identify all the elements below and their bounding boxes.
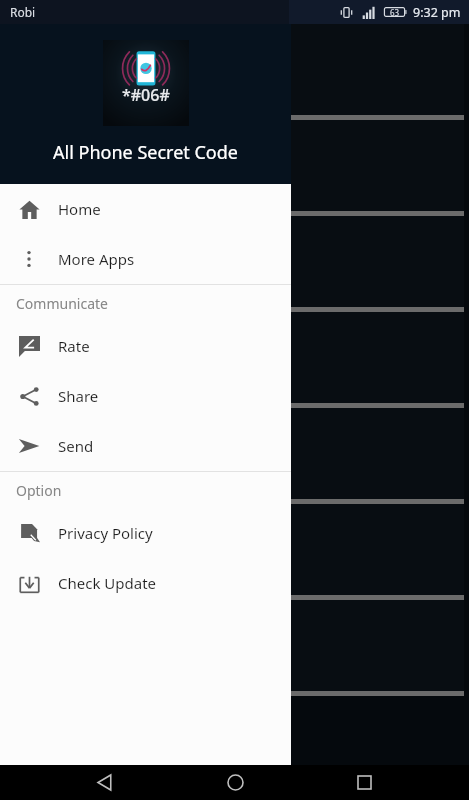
button[interactable]: Recent apps (340, 765, 388, 800)
button[interactable]: Check Update (0, 558, 291, 608)
button[interactable]: Sony Secret Codes (28, 312, 464, 403)
staticText: Samsung Secret Codes (50, 153, 257, 179)
staticText: Privacy Policy (58, 523, 153, 543)
staticText: More Apps (58, 249, 135, 269)
staticText: Send (58, 436, 94, 456)
button[interactable]: Samsung Secret Codes (28, 120, 464, 211)
staticText: Check Update (58, 573, 157, 593)
staticText: *#06# (122, 84, 170, 106)
button[interactable]: Android Secret Codes (28, 24, 464, 115)
staticText: Home (58, 199, 101, 219)
button[interactable]: HTC Secret Codes (28, 408, 464, 499)
button[interactable]: iPhone Secret Codes (28, 600, 464, 691)
staticText: Sony Secret Codes (50, 345, 217, 371)
staticText: 63 (390, 7, 400, 18)
button[interactable]: Back (81, 765, 129, 800)
staticText: Nokia Secret Codes (50, 249, 225, 275)
button[interactable]: Home (0, 184, 291, 234)
staticText: Android Secret Codes (50, 57, 245, 83)
staticText: Rate (58, 336, 90, 356)
staticText: HTC Secret Codes (50, 441, 209, 467)
staticText: Option (16, 481, 62, 500)
button[interactable]: Send (0, 421, 291, 471)
button[interactable]: More Apps (0, 234, 291, 284)
button[interactable]: Share (0, 371, 291, 421)
button[interactable]: Nokia Secret Codes (28, 216, 464, 307)
button[interactable]: BlackBerry Secret Codes (28, 504, 464, 595)
button[interactable]: Privacy Policy (0, 508, 291, 558)
staticText: Share (58, 386, 99, 406)
staticText: BlackBerry Secret Codes (50, 537, 270, 563)
staticText: 9:32 pm (413, 4, 461, 21)
staticText: All Phone Secret Code (53, 140, 238, 165)
button[interactable]: Rate (0, 321, 291, 371)
staticText: Communicate (16, 294, 108, 313)
staticText: Robi (10, 4, 36, 20)
button[interactable]: Home (211, 765, 259, 800)
